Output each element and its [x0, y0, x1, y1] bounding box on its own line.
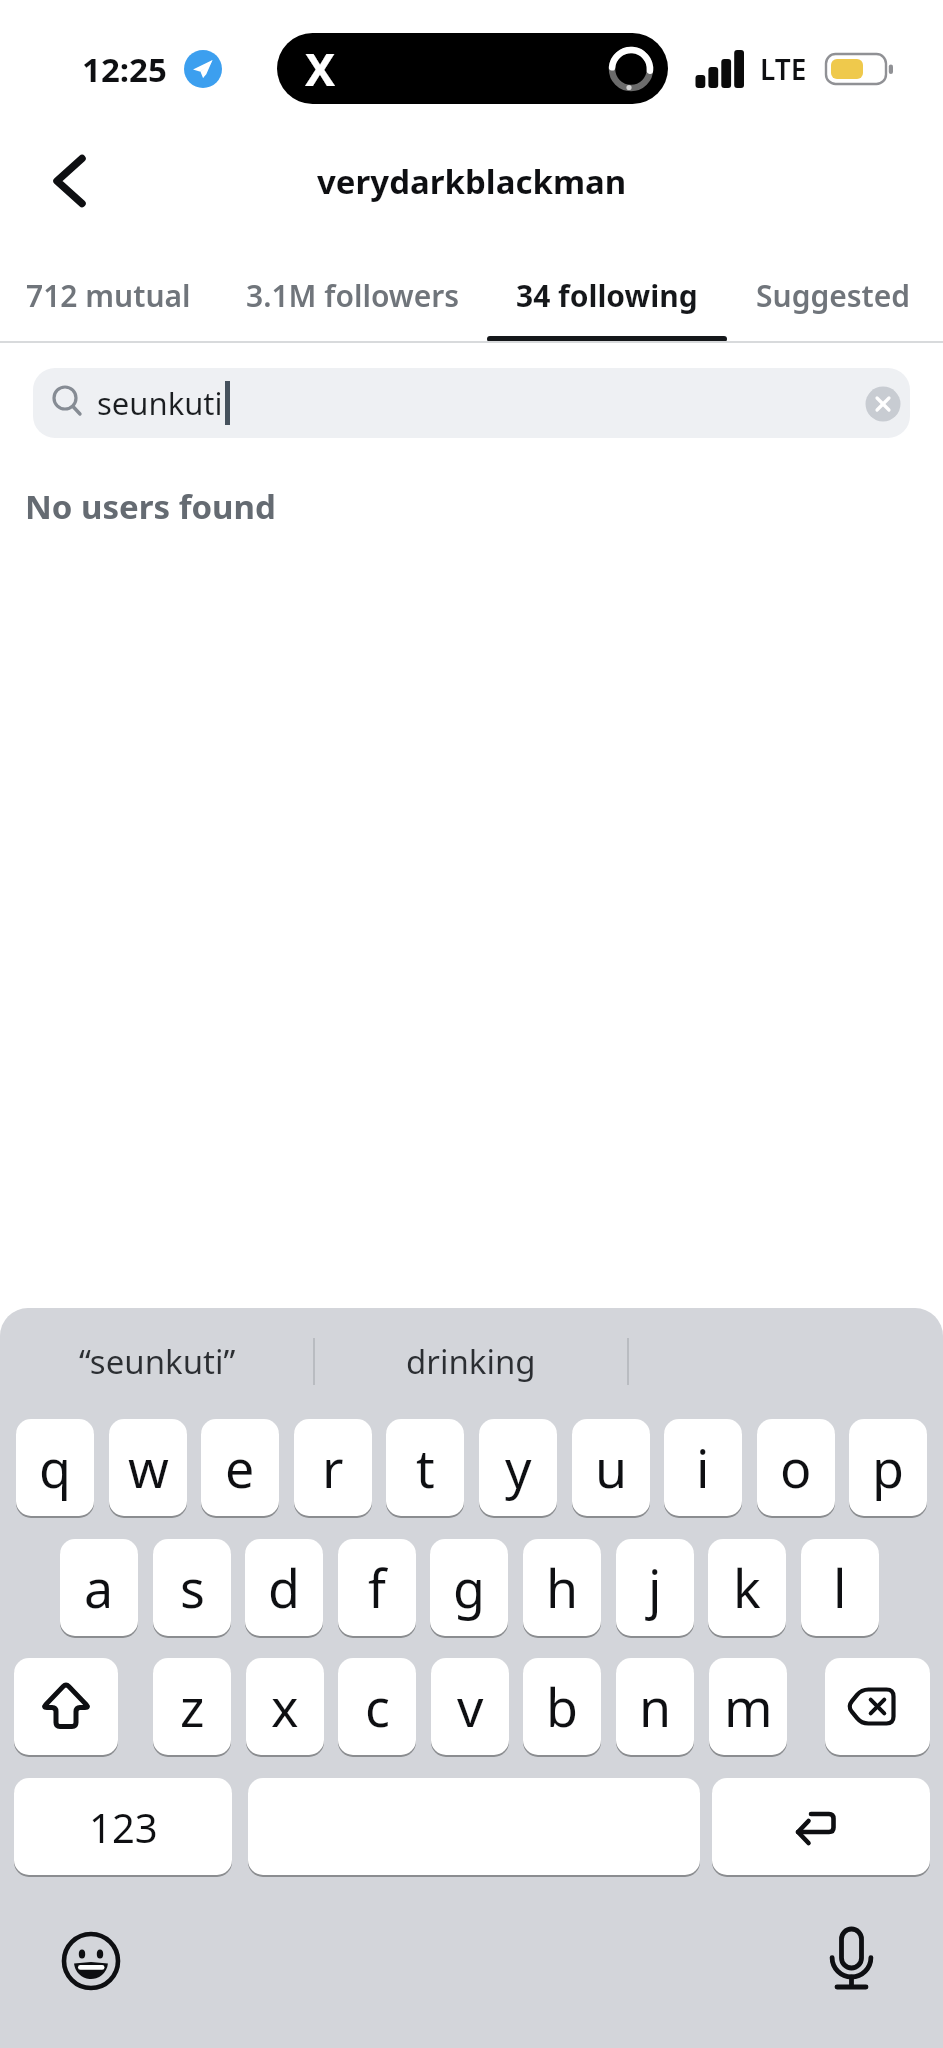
staticText: No users found [25, 484, 276, 524]
button[interactable]: p [849, 1419, 927, 1516]
button[interactable] [14, 1658, 118, 1755]
button[interactable]: 123 [14, 1778, 232, 1875]
button[interactable]: e [201, 1419, 279, 1516]
button[interactable]: t [386, 1419, 464, 1516]
button[interactable]: x [246, 1658, 324, 1755]
staticText: 123 [89, 1800, 158, 1854]
button[interactable]: k [708, 1539, 786, 1636]
button[interactable]: z [153, 1658, 231, 1755]
button[interactable]: q [16, 1419, 94, 1516]
staticText: j [648, 1552, 662, 1623]
staticText: o [780, 1432, 812, 1503]
staticText: f [368, 1552, 386, 1623]
staticText: x [271, 1671, 299, 1742]
button[interactable]: y [479, 1419, 557, 1516]
button[interactable]: g [430, 1539, 508, 1636]
button[interactable] [58, 1928, 124, 1994]
button[interactable]: 3.1M followers [238, 268, 468, 322]
button[interactable]: w [109, 1419, 187, 1516]
button[interactable] [38, 148, 102, 214]
button[interactable] [248, 1778, 700, 1875]
staticText: w [128, 1432, 169, 1503]
button[interactable]: Suggested [743, 268, 923, 322]
button[interactable]: “seunkuti” [0, 1308, 314, 1414]
staticText: p [872, 1432, 904, 1503]
staticText: drinking [406, 1339, 536, 1384]
staticText: “seunkuti” [79, 1339, 236, 1384]
staticText: n [639, 1671, 672, 1742]
staticText: h [546, 1552, 579, 1623]
button[interactable]: h [523, 1539, 601, 1636]
button[interactable] [712, 1778, 930, 1875]
button[interactable]: s [153, 1539, 231, 1636]
button[interactable]: o [757, 1419, 835, 1516]
staticText: m [724, 1671, 773, 1742]
staticText: l [833, 1552, 847, 1623]
staticText: c [365, 1671, 390, 1742]
button[interactable]: f [338, 1539, 416, 1636]
button[interactable]: r [294, 1419, 372, 1516]
staticText: r [322, 1432, 344, 1503]
staticText: v [457, 1671, 484, 1742]
button[interactable]: 712 mutual [18, 268, 198, 322]
staticText: k [733, 1552, 761, 1623]
staticText: d [268, 1552, 300, 1623]
button[interactable]: drinking [314, 1308, 628, 1414]
staticText: e [225, 1432, 255, 1503]
button[interactable] [818, 1924, 886, 1996]
staticText: X [305, 38, 336, 99]
staticText: 34 following [516, 275, 698, 316]
button[interactable]: j [616, 1539, 694, 1636]
button[interactable]: n [616, 1658, 694, 1755]
button[interactable]: i [664, 1419, 742, 1516]
staticText: 3.1M followers [246, 275, 460, 316]
staticText: u [595, 1432, 628, 1503]
staticText: z [180, 1671, 205, 1742]
button[interactable]: c [338, 1658, 416, 1755]
button[interactable]: 34 following [497, 268, 717, 322]
staticText: verydarkblackman [317, 159, 627, 204]
staticText: g [453, 1552, 485, 1623]
staticText: s [180, 1552, 205, 1623]
button[interactable]: b [523, 1658, 601, 1755]
staticText: a [84, 1552, 114, 1623]
button[interactable]: seunkuti [33, 368, 910, 438]
button[interactable]: m [709, 1658, 787, 1755]
button[interactable]: a [60, 1539, 138, 1636]
staticText: 12:25 [82, 47, 167, 92]
staticText: t [416, 1432, 435, 1503]
staticText: Suggested [756, 275, 911, 316]
staticText: seunkuti [97, 382, 223, 424]
staticText: q [39, 1432, 71, 1503]
staticText: LTE [760, 50, 807, 88]
button[interactable] [825, 1658, 930, 1755]
button[interactable]: u [572, 1419, 650, 1516]
staticText: 712 mutual [26, 275, 191, 316]
staticText: y [505, 1432, 532, 1503]
staticText: i [696, 1432, 710, 1503]
button[interactable]: d [245, 1539, 323, 1636]
button[interactable] [863, 384, 903, 424]
button[interactable]: v [431, 1658, 509, 1755]
staticText: b [546, 1671, 578, 1742]
button[interactable]: l [801, 1539, 879, 1636]
